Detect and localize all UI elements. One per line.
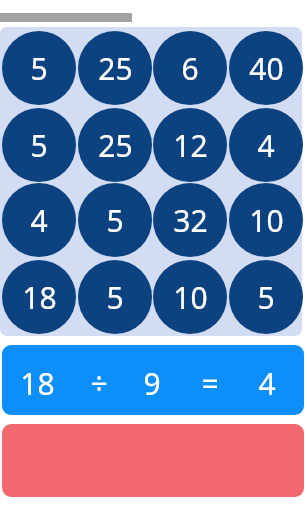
staticText: 25 xyxy=(98,48,133,89)
button[interactable]: Equation 18 divided by 9 equals 4 xyxy=(2,345,304,415)
button[interactable]: 32 xyxy=(153,183,227,257)
staticText: 12 xyxy=(173,125,208,166)
staticText: 5 xyxy=(30,125,48,166)
staticText: 40 xyxy=(249,48,284,89)
staticText: 5 xyxy=(106,200,124,241)
button[interactable]: 10 xyxy=(229,183,303,257)
button[interactable]: 5 xyxy=(78,183,152,257)
button[interactable]: 25 xyxy=(78,108,152,182)
staticText: 5 xyxy=(30,48,48,89)
staticText: 10 xyxy=(249,200,284,241)
button[interactable]: 4 xyxy=(229,108,303,182)
button[interactable]: 4 xyxy=(2,183,76,257)
button[interactable]: 25 xyxy=(78,31,152,105)
button[interactable]: 5 xyxy=(78,260,152,334)
button[interactable]: 5 xyxy=(2,31,76,105)
staticText: 18 xyxy=(20,363,55,404)
button[interactable]: 40 xyxy=(229,31,303,105)
staticText: 6 xyxy=(181,48,199,89)
staticText: 25 xyxy=(98,125,133,166)
staticText: 10 xyxy=(173,277,208,318)
button[interactable]: 10 xyxy=(153,260,227,334)
staticText: 9 xyxy=(143,363,161,404)
staticText: 4 xyxy=(257,125,275,166)
staticText: 32 xyxy=(173,200,208,241)
button[interactable]: Answer slot xyxy=(2,424,304,497)
button[interactable]: 6 xyxy=(153,31,227,105)
button[interactable]: 12 xyxy=(153,108,227,182)
staticText: 4 xyxy=(30,200,48,241)
staticText: 5 xyxy=(257,277,275,318)
staticText: ÷ xyxy=(90,363,108,404)
staticText: 4 xyxy=(258,363,276,404)
button[interactable]: 18 xyxy=(2,260,76,334)
staticText: 18 xyxy=(22,277,57,318)
button[interactable]: 5 xyxy=(2,108,76,182)
button[interactable]: 5 xyxy=(229,260,303,334)
staticText: 5 xyxy=(106,277,124,318)
staticText: = xyxy=(201,363,219,404)
